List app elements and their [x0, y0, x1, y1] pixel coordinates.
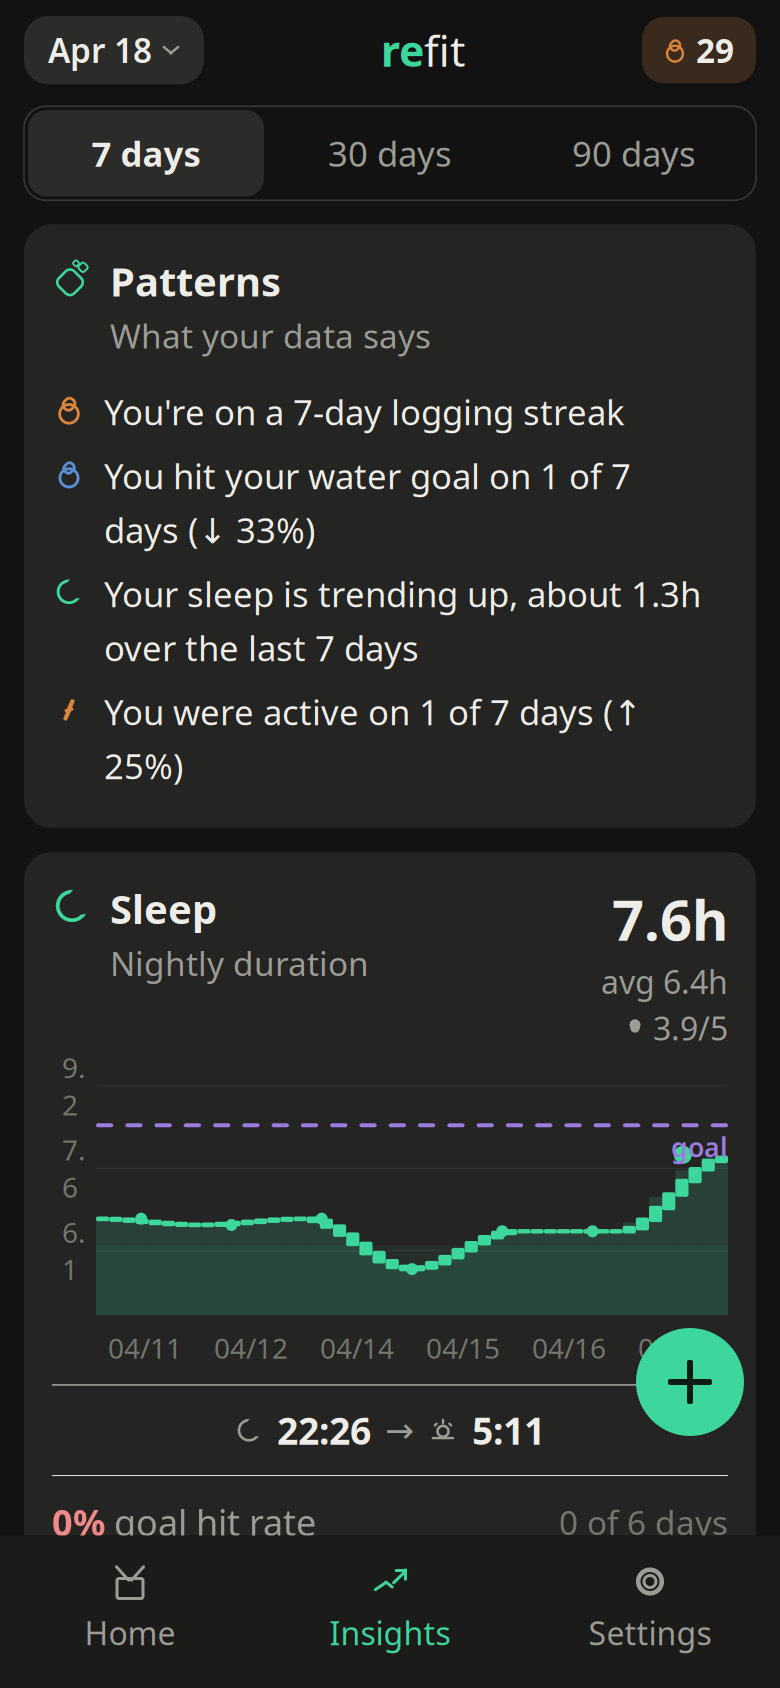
button[interactable]: Streak 29 days: [642, 17, 756, 83]
staticText: 5:11: [472, 1405, 545, 1455]
staticText: 6.1: [62, 1213, 86, 1288]
staticText: You were active on 1 of 7 days (↑ 25%): [104, 689, 642, 789]
button[interactable]: 30 days: [268, 106, 512, 200]
button[interactable]: Apr 18: [24, 16, 204, 84]
staticText: 9.2: [62, 1049, 86, 1123]
staticText: fit: [424, 22, 465, 78]
staticText: 22:26: [277, 1405, 371, 1455]
staticText: Insights: [329, 1611, 450, 1654]
button[interactable]: Insights: [260, 1557, 520, 1658]
button[interactable]: Home: [0, 1557, 260, 1658]
staticText: 90 days: [572, 130, 696, 176]
staticText: 7.6: [62, 1131, 86, 1205]
staticText: goal: [671, 1129, 728, 1165]
button[interactable]: Add entry: [636, 1328, 744, 1436]
staticText: Weight: [110, 1630, 252, 1683]
staticText: 04/14: [320, 1329, 394, 1366]
staticText: Your sleep is trending up, about 1.3h ov…: [104, 571, 701, 671]
staticText: 76.4 kg: [531, 1630, 728, 1688]
staticText: 04/15: [426, 1329, 500, 1366]
staticText: avg 6.4h: [601, 960, 728, 1003]
staticText: 3.9/5: [653, 1007, 728, 1049]
staticText: You hit your water goal on 1 of 7 days (…: [104, 453, 631, 553]
staticText: →: [385, 1411, 414, 1450]
staticText: re: [381, 22, 424, 78]
staticText: Nightly duration: [110, 941, 369, 985]
staticText: You're on a 7-day logging streak: [104, 389, 625, 435]
staticText: 04/12: [214, 1329, 288, 1366]
staticText: 04/11: [108, 1329, 182, 1366]
staticText: Settings: [588, 1611, 711, 1654]
staticText: 7.6h: [612, 882, 728, 956]
staticText: 30 days: [328, 130, 452, 176]
staticText: Patterns: [110, 254, 281, 307]
staticText: Home: [84, 1611, 175, 1654]
staticText: 29: [696, 28, 734, 72]
button[interactable]: 7 days: [24, 106, 268, 200]
button[interactable]: Settings: [520, 1557, 780, 1658]
staticText: Sleep: [110, 882, 217, 935]
staticText: 7 days: [91, 130, 200, 176]
button[interactable]: 90 days: [512, 106, 756, 200]
staticText: Apr 18: [48, 28, 152, 72]
staticText: goal hit rate: [105, 1498, 316, 1546]
staticText: 04/17: [638, 1329, 712, 1366]
staticText: 0%: [52, 1498, 105, 1546]
staticText: What your data says: [110, 313, 431, 358]
staticText: 04/16: [532, 1329, 606, 1366]
staticText: 0 of 6 days: [559, 1500, 728, 1544]
